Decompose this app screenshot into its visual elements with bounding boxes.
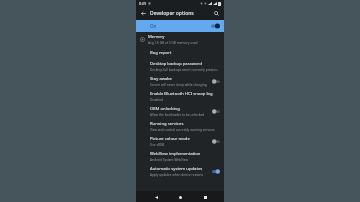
button[interactable]: OEM unlocking toggle bbox=[212, 109, 220, 114]
button[interactable]: Home bbox=[175, 192, 185, 202]
staticText: Memory bbox=[148, 34, 165, 40]
button[interactable]: Bug report bbox=[136, 47, 224, 59]
staticText: Disabled bbox=[150, 98, 164, 102]
button[interactable]: Back bbox=[139, 9, 148, 18]
button[interactable]: Recents bbox=[200, 192, 210, 202]
staticText: Android System WebView bbox=[150, 158, 189, 162]
staticText: 8:09 bbox=[139, 1, 146, 6]
button[interactable]: Running services bbox=[136, 119, 224, 134]
staticText: Use sRGB bbox=[150, 143, 165, 147]
button[interactable]: Memory bbox=[136, 32, 224, 47]
button[interactable]: Enable Bluetooth HCI snoop log bbox=[136, 89, 224, 104]
staticText: Bug report bbox=[150, 50, 172, 56]
button[interactable]: WebView implementation bbox=[136, 149, 224, 164]
staticText: Allow the bootloader to be unlocked bbox=[150, 113, 205, 117]
staticText: Desktop backup password bbox=[150, 61, 202, 67]
button[interactable]: Search bbox=[212, 9, 221, 18]
staticText: Enable Bluetooth HCI snoop log bbox=[150, 91, 213, 97]
staticText: Desktop full backups aren't currently pr… bbox=[150, 68, 220, 72]
staticText: On bbox=[150, 23, 157, 29]
button[interactable]: Picture colour mode toggle bbox=[212, 139, 220, 144]
staticText: OEM unlocking bbox=[150, 106, 180, 112]
staticText: Running services bbox=[150, 121, 184, 127]
staticText: Screen will never sleep while charging bbox=[150, 83, 207, 87]
staticText: Avg 1.6 GB of 3 GB memory used bbox=[148, 41, 198, 45]
button[interactable]: Desktop backup password bbox=[136, 59, 224, 74]
staticText: Automatic system updates bbox=[150, 166, 203, 172]
staticText: Picture colour mode bbox=[150, 136, 190, 142]
button[interactable]: Automatic system updates bbox=[136, 164, 224, 179]
button[interactable]: Back bbox=[151, 192, 161, 202]
button[interactable]: OEM unlocking bbox=[136, 104, 224, 119]
staticText: Stay awake bbox=[150, 76, 172, 82]
staticText: WebView implementation bbox=[150, 151, 201, 157]
button[interactable]: Stay awake toggle bbox=[212, 79, 220, 84]
staticText: View and control currently running servi… bbox=[150, 128, 215, 132]
button[interactable]: Automatic system updates toggle bbox=[212, 169, 220, 174]
button[interactable]: Picture colour mode bbox=[136, 134, 224, 149]
staticText: Apply updates when device restarts bbox=[150, 173, 204, 177]
staticText: Developer options bbox=[150, 10, 212, 17]
button[interactable]: Stay awake bbox=[136, 74, 224, 89]
button[interactable]: On bbox=[136, 20, 224, 32]
